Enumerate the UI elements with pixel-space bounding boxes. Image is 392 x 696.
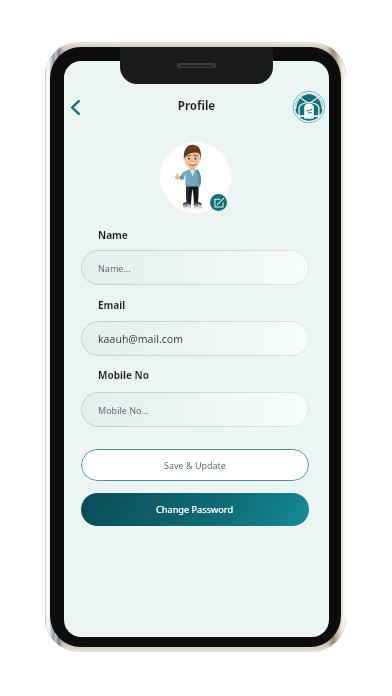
staticText: Mobile No... <box>98 404 149 416</box>
staticText: Name... <box>98 262 131 274</box>
button[interactable]: Save & Update <box>81 449 309 481</box>
staticText: Change Password <box>156 503 234 516</box>
staticText: Save & Update <box>164 459 226 471</box>
button[interactable]: Back <box>64 94 88 120</box>
staticText: Mobile No <box>98 368 149 382</box>
staticText: Name <box>98 228 128 242</box>
staticText: kaauh@mail.com <box>98 332 183 346</box>
button[interactable]: Change Password <box>81 493 309 526</box>
staticText: Email <box>98 298 126 312</box>
button[interactable]: Mobile No... <box>81 392 309 427</box>
button[interactable]: Edit profile photo <box>210 194 227 211</box>
button[interactable]: Name... <box>81 250 309 285</box>
button[interactable]: kaauh@mail.com <box>81 321 309 356</box>
staticText: Profile <box>64 98 329 114</box>
button[interactable]: University logo <box>293 91 325 123</box>
